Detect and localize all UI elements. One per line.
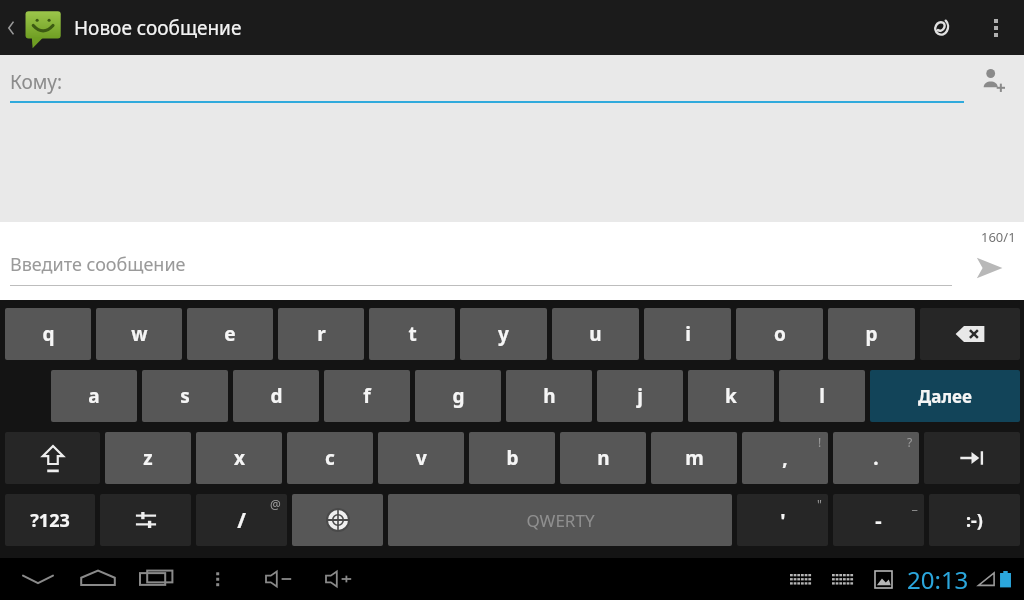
staticText: h [543, 383, 556, 409]
staticText: c [325, 445, 335, 471]
button[interactable]: Send [962, 241, 1016, 295]
button[interactable]: ! [742, 432, 828, 484]
staticText: m [685, 445, 704, 471]
staticText: ' [780, 507, 786, 534]
staticText: f [363, 383, 371, 409]
button[interactable]: Volume down [248, 558, 308, 600]
button[interactable]: Backspace [920, 308, 1020, 360]
staticText: o [774, 321, 786, 347]
staticText: g [452, 383, 465, 409]
button[interactable]: Change language [292, 494, 383, 546]
button[interactable]: b [469, 432, 555, 484]
button[interactable]: j [597, 370, 683, 422]
staticText: Кому: [10, 69, 63, 95]
staticText: - [875, 507, 882, 534]
button[interactable]: Menu [188, 558, 248, 600]
staticText: ? [907, 434, 913, 450]
staticText: :-) [966, 508, 983, 533]
button[interactable]: Tab [924, 432, 1020, 484]
staticText: QWERTY [526, 509, 595, 532]
button[interactable]: z [105, 432, 191, 484]
staticText: l [819, 383, 825, 409]
staticText: 20:13 [907, 563, 969, 596]
button[interactable]: Volume up [308, 558, 368, 600]
button[interactable]: " [737, 494, 828, 546]
button[interactable]: ?123 [5, 494, 95, 546]
staticText: Далее [918, 385, 972, 408]
staticText: w [131, 321, 148, 347]
button[interactable]: Hide keyboard [8, 558, 68, 600]
button[interactable]: :-) [929, 494, 1020, 546]
staticText: i [685, 321, 691, 347]
button[interactable]: Back [0, 0, 246, 55]
button[interactable]: n [560, 432, 646, 484]
button[interactable]: a [51, 370, 137, 422]
staticText: 160/1 [981, 228, 1016, 246]
staticText: Введите сообщение [10, 252, 186, 277]
button[interactable]: Shift [5, 432, 100, 484]
button[interactable]: @ [196, 494, 287, 546]
button[interactable]: l [779, 370, 865, 422]
staticText: d [270, 383, 283, 409]
staticText: _ [912, 496, 918, 512]
staticText: j [637, 383, 643, 409]
button[interactable]: f [324, 370, 410, 422]
staticText: , [782, 445, 788, 471]
button[interactable]: Recent apps [128, 558, 188, 600]
button[interactable]: i [644, 308, 731, 360]
button[interactable]: q [5, 308, 91, 360]
staticText: s [180, 383, 190, 409]
button[interactable]: Add contact [970, 58, 1014, 102]
button[interactable]: r [278, 308, 364, 360]
button[interactable]: k [688, 370, 774, 422]
button[interactable]: g [415, 370, 501, 422]
staticText: y [498, 321, 509, 347]
button[interactable]: QWERTY [388, 494, 732, 546]
staticText: k [725, 383, 737, 409]
button[interactable]: s [142, 370, 228, 422]
button[interactable]: Далее [870, 370, 1020, 422]
button[interactable]: h [506, 370, 592, 422]
staticText: q [42, 321, 55, 347]
staticText: . [873, 445, 879, 471]
staticText: z [143, 445, 153, 471]
staticText: x [234, 445, 245, 471]
button[interactable]: c [287, 432, 373, 484]
button[interactable]: p [828, 308, 915, 360]
staticText: / [237, 506, 246, 535]
button[interactable]: Home [68, 558, 128, 600]
button[interactable]: ? [833, 432, 919, 484]
button[interactable]: Screenshot [863, 559, 903, 599]
button[interactable]: Keyboard settings [100, 494, 191, 546]
button[interactable]: d [233, 370, 319, 422]
button[interactable]: y [460, 308, 547, 360]
staticText: b [506, 445, 519, 471]
button[interactable]: _ [833, 494, 924, 546]
staticText: t [408, 321, 417, 347]
button[interactable]: u [552, 308, 639, 360]
button[interactable]: m [651, 432, 737, 484]
staticText: " [817, 496, 822, 512]
staticText: n [597, 445, 610, 471]
button[interactable]: t [369, 308, 455, 360]
button[interactable]: Keyboard layout [779, 559, 821, 599]
staticText: a [88, 383, 100, 409]
staticText: Новое сообщение [74, 15, 242, 41]
staticText: p [865, 321, 878, 347]
staticText: r [317, 321, 326, 347]
button[interactable]: x [196, 432, 282, 484]
button[interactable]: More options [968, 0, 1024, 55]
staticText: u [589, 321, 602, 347]
button[interactable]: w [96, 308, 182, 360]
staticText: e [224, 321, 236, 347]
button[interactable]: v [378, 432, 464, 484]
staticText: @ [270, 496, 281, 512]
staticText: v [416, 445, 427, 471]
button[interactable]: Keyboard layout [821, 559, 863, 599]
staticText: ! [818, 434, 822, 450]
staticText: ?123 [30, 508, 70, 533]
button[interactable]: Attach [912, 0, 968, 55]
button[interactable]: o [736, 308, 823, 360]
button[interactable]: e [187, 308, 273, 360]
